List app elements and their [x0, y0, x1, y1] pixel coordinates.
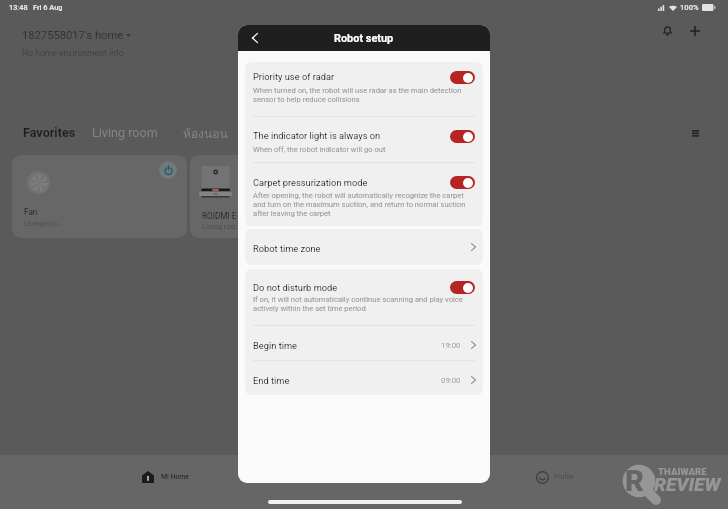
staticText: Living roo... — [24, 219, 63, 228]
button[interactable]: Begin time — [245, 325, 483, 360]
staticText: Carpet pressurization mode — [253, 177, 368, 188]
button[interactable]: 1827558017's home — [22, 29, 124, 42]
staticText: REVIEW — [654, 473, 721, 495]
button[interactable]: Notifications — [658, 21, 676, 39]
button[interactable]: Toggle switch — [450, 71, 475, 84]
staticText: Favorites — [23, 125, 76, 140]
staticText: Fri 6 Aug — [33, 3, 63, 12]
button[interactable]: Living room — [92, 125, 158, 140]
button[interactable]: The indicator light is always on — [245, 116, 483, 162]
button[interactable]: Toggle switch — [450, 176, 475, 189]
button[interactable]: ห้องนอน — [183, 124, 228, 143]
button[interactable]: End time — [245, 360, 483, 395]
staticText: When off, the robot indicator will go ou… — [253, 145, 469, 154]
staticText: ห้องนอน — [183, 124, 228, 143]
staticText: End time — [253, 375, 290, 386]
staticText: Robot time zone — [253, 243, 321, 254]
staticText: 100% — [680, 3, 699, 12]
staticText: 13:48 — [9, 3, 28, 12]
button[interactable]: Favorites — [23, 125, 76, 140]
staticText: After opening, the robot will automatica… — [253, 191, 469, 218]
staticText: Robot setup — [334, 32, 394, 45]
staticText: Begin time — [253, 340, 298, 351]
button[interactable]: Priority use of radar — [245, 62, 483, 116]
staticText: Priority use of radar — [253, 71, 335, 82]
staticText: ROIDMI E — [202, 211, 237, 221]
button[interactable]: Power — [12, 155, 187, 238]
button[interactable]: Toggle switch — [450, 281, 475, 294]
staticText: Living room — [92, 125, 158, 140]
button[interactable]: ROIDMI E — [190, 155, 365, 238]
button[interactable]: Toggle switch — [450, 130, 475, 143]
staticText: 09:00 — [441, 376, 461, 385]
staticText: THAIWARE — [658, 466, 707, 477]
button[interactable]: Robot time zone — [245, 229, 483, 265]
button[interactable]: Profile — [536, 468, 574, 486]
button[interactable]: Back — [245, 28, 265, 48]
staticText: When turned on, the robot will use radar… — [253, 86, 469, 104]
staticText: 19:00 — [441, 341, 461, 350]
staticText: 1827558017's home — [22, 29, 124, 42]
staticText: No home environment info — [22, 48, 124, 58]
staticText: If on, it will not automatically continu… — [253, 295, 469, 313]
button[interactable]: Do not disturb mode — [245, 269, 483, 325]
staticText: The indicator light is always on — [253, 130, 381, 141]
staticText: R — [625, 464, 644, 498]
staticText: Mi Home — [161, 473, 189, 481]
staticText: Living roo... — [202, 222, 241, 231]
staticText: Do not disturb mode — [253, 282, 338, 293]
button[interactable]: Add device — [686, 22, 704, 40]
staticText: Profile — [554, 473, 574, 481]
button[interactable]: Carpet pressurization mode — [245, 162, 483, 225]
button[interactable]: Menu — [687, 126, 703, 142]
staticText: Fan — [24, 207, 38, 217]
button[interactable]: Mi Home — [142, 468, 189, 486]
button[interactable]: Power — [159, 161, 177, 179]
